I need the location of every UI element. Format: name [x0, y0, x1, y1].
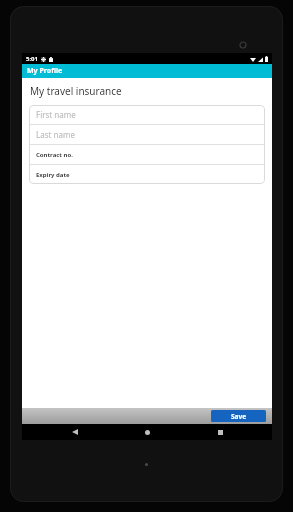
staticText: Last name — [36, 129, 75, 140]
button[interactable]: First name — [29, 105, 265, 124]
button[interactable]: My Profile — [22, 64, 272, 78]
staticText: 5:01 — [26, 55, 38, 63]
button[interactable]: Last name — [29, 125, 265, 144]
button[interactable]: Expiry date — [29, 165, 265, 184]
button[interactable]: Contract no. — [29, 145, 265, 164]
staticText: Contract no. — [36, 151, 73, 159]
button[interactable]: Back — [55, 424, 95, 440]
button[interactable]: Home — [127, 424, 167, 440]
staticText: Save — [231, 412, 247, 421]
button[interactable]: Recent apps — [200, 424, 240, 440]
button[interactable]: Save — [211, 410, 266, 422]
staticText: First name — [36, 109, 76, 120]
staticText: My Profile — [27, 66, 63, 76]
staticText: My travel insurance — [30, 84, 122, 98]
staticText: Expiry date — [36, 171, 70, 179]
